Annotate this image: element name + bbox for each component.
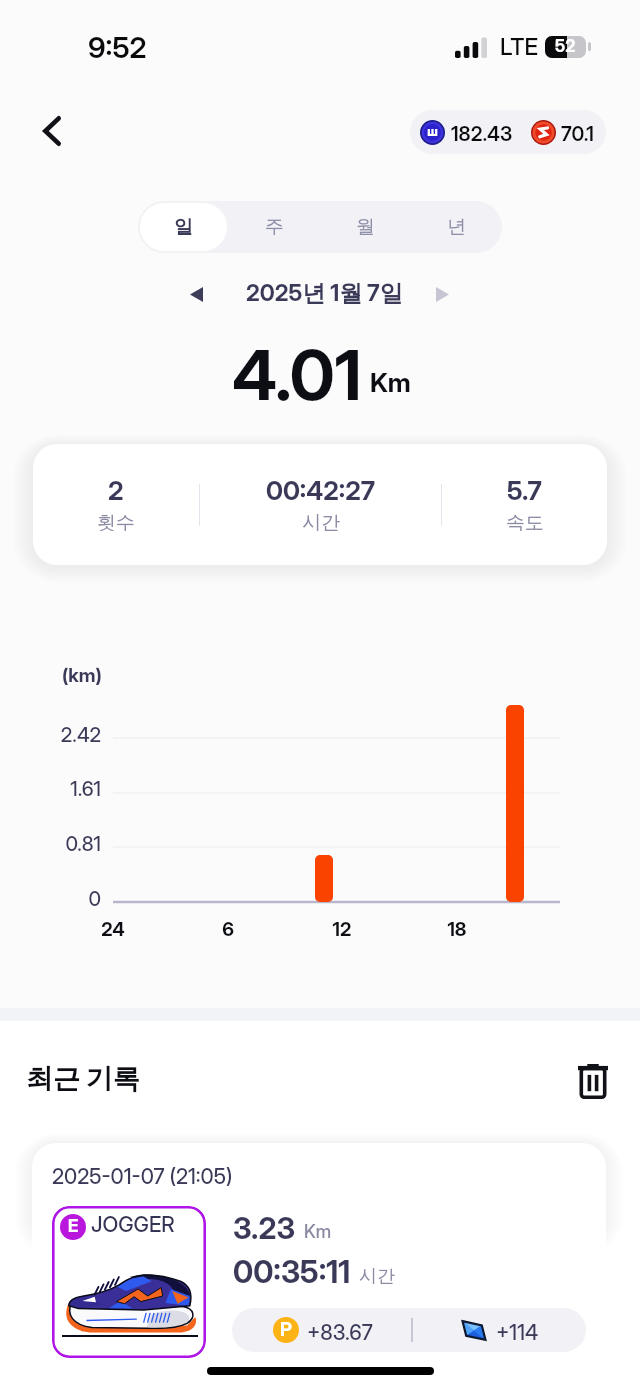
staticText: Km xyxy=(304,1221,332,1243)
staticText: 00:35:11 xyxy=(233,1253,351,1291)
staticText: 2.42 xyxy=(44,723,101,747)
staticText: 6 xyxy=(198,918,258,941)
staticText: 5.7 xyxy=(507,475,542,506)
staticText: 주 xyxy=(265,215,284,239)
staticText: 182.43 xyxy=(451,122,513,146)
staticText: 2 xyxy=(108,475,124,506)
staticText: 속도 xyxy=(506,511,544,535)
staticText: 70.1 xyxy=(561,122,594,146)
staticText: 횟수 xyxy=(97,511,135,535)
button[interactable]: 182.43 xyxy=(410,110,606,154)
button[interactable]: 일 xyxy=(140,203,227,251)
staticText: +83.67 xyxy=(307,1320,373,1345)
staticText: 3.23 xyxy=(233,1210,296,1246)
staticText: E xyxy=(68,1216,79,1237)
staticText: 12 xyxy=(312,918,372,941)
button[interactable]: Next day xyxy=(420,272,464,316)
staticText: 0 xyxy=(44,887,101,911)
staticText: 2025년 1월 7일 xyxy=(246,279,403,308)
button[interactable]: 주 xyxy=(231,203,318,251)
button[interactable]: 5.7 xyxy=(442,475,607,535)
staticText: 24 xyxy=(83,918,143,941)
staticText: 월 xyxy=(356,215,375,239)
staticText: 시간 xyxy=(302,511,340,535)
staticText: 00:42:27 xyxy=(266,475,376,506)
staticText: 2025-01-07 (21:05) xyxy=(52,1164,233,1189)
button[interactable]: Delete xyxy=(568,1056,618,1106)
button[interactable]: Previous day xyxy=(174,272,218,316)
staticText: LTE xyxy=(500,33,539,61)
button[interactable]: 월 xyxy=(322,203,409,251)
staticText: 일 xyxy=(174,215,193,239)
button[interactable]: 2 xyxy=(33,475,199,535)
button[interactable]: 2025-01-07 (21:05) xyxy=(32,1143,606,1387)
button[interactable]: P xyxy=(232,1308,586,1352)
staticText: 4.01 xyxy=(232,333,362,416)
staticText: 9:52 xyxy=(88,30,147,65)
staticText: 0.81 xyxy=(44,832,101,856)
staticText: 1.61 xyxy=(44,777,101,801)
staticText: P xyxy=(280,1318,292,1341)
button[interactable]: Back xyxy=(24,103,80,159)
staticText: (km) xyxy=(62,664,102,687)
staticText: 최근 기록 xyxy=(26,1062,140,1096)
staticText: 시간 xyxy=(359,1265,395,1288)
button[interactable]: 00:42:27 xyxy=(200,475,441,535)
staticText: 52 xyxy=(555,36,576,57)
staticText: 18 xyxy=(427,918,487,941)
staticText: +114 xyxy=(496,1320,539,1345)
staticText: Km xyxy=(370,367,411,398)
button[interactable]: 년 xyxy=(413,203,500,251)
staticText: JOGGER xyxy=(91,1212,175,1237)
staticText: 년 xyxy=(447,215,466,239)
